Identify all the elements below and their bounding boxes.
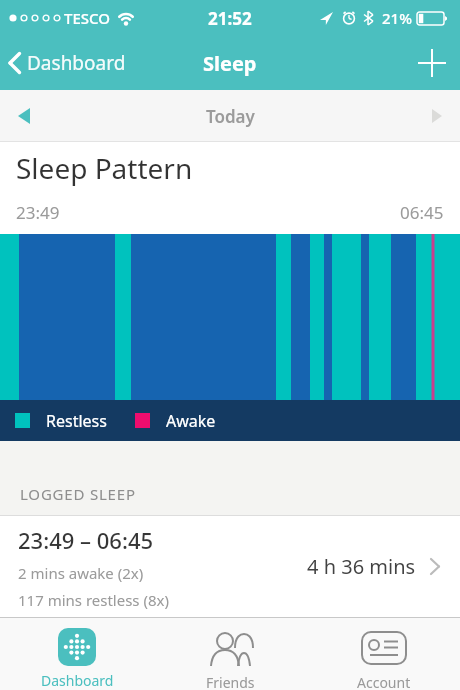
button[interactable]: 23:49 – 06:45	[0, 515, 460, 617]
staticText: Awake	[166, 410, 216, 432]
button[interactable]: Account	[307, 618, 460, 690]
staticText: 23:49 – 06:45	[18, 525, 154, 555]
staticText: Restless	[46, 410, 107, 432]
staticText: 2 mins awake (2x)	[18, 563, 144, 583]
staticText: Today	[206, 105, 255, 128]
staticText: Dashboard	[41, 671, 114, 690]
staticText: 21%	[382, 8, 412, 28]
button[interactable]: Dashboard	[0, 618, 154, 690]
staticText: Friends	[206, 673, 255, 690]
staticText: 21:52	[208, 7, 252, 30]
staticText: TESCO	[64, 8, 111, 28]
staticText: Sleep	[203, 50, 257, 77]
staticText: Sleep Pattern	[16, 149, 193, 187]
button[interactable]	[418, 49, 446, 77]
staticText: 06:45	[400, 201, 444, 224]
staticText: LOGGED SLEEP	[20, 484, 136, 504]
button[interactable]: Friends	[154, 618, 307, 690]
staticText: 4 h 36 mins	[307, 553, 416, 580]
button[interactable]	[18, 108, 30, 124]
button[interactable]	[432, 109, 442, 123]
staticText: 117 mins restless (8x)	[18, 590, 169, 610]
staticText: Account	[357, 673, 411, 690]
staticText: Dashboard	[27, 50, 126, 76]
button[interactable]: Dashboard	[8, 50, 126, 76]
staticText: 23:49	[16, 201, 60, 224]
